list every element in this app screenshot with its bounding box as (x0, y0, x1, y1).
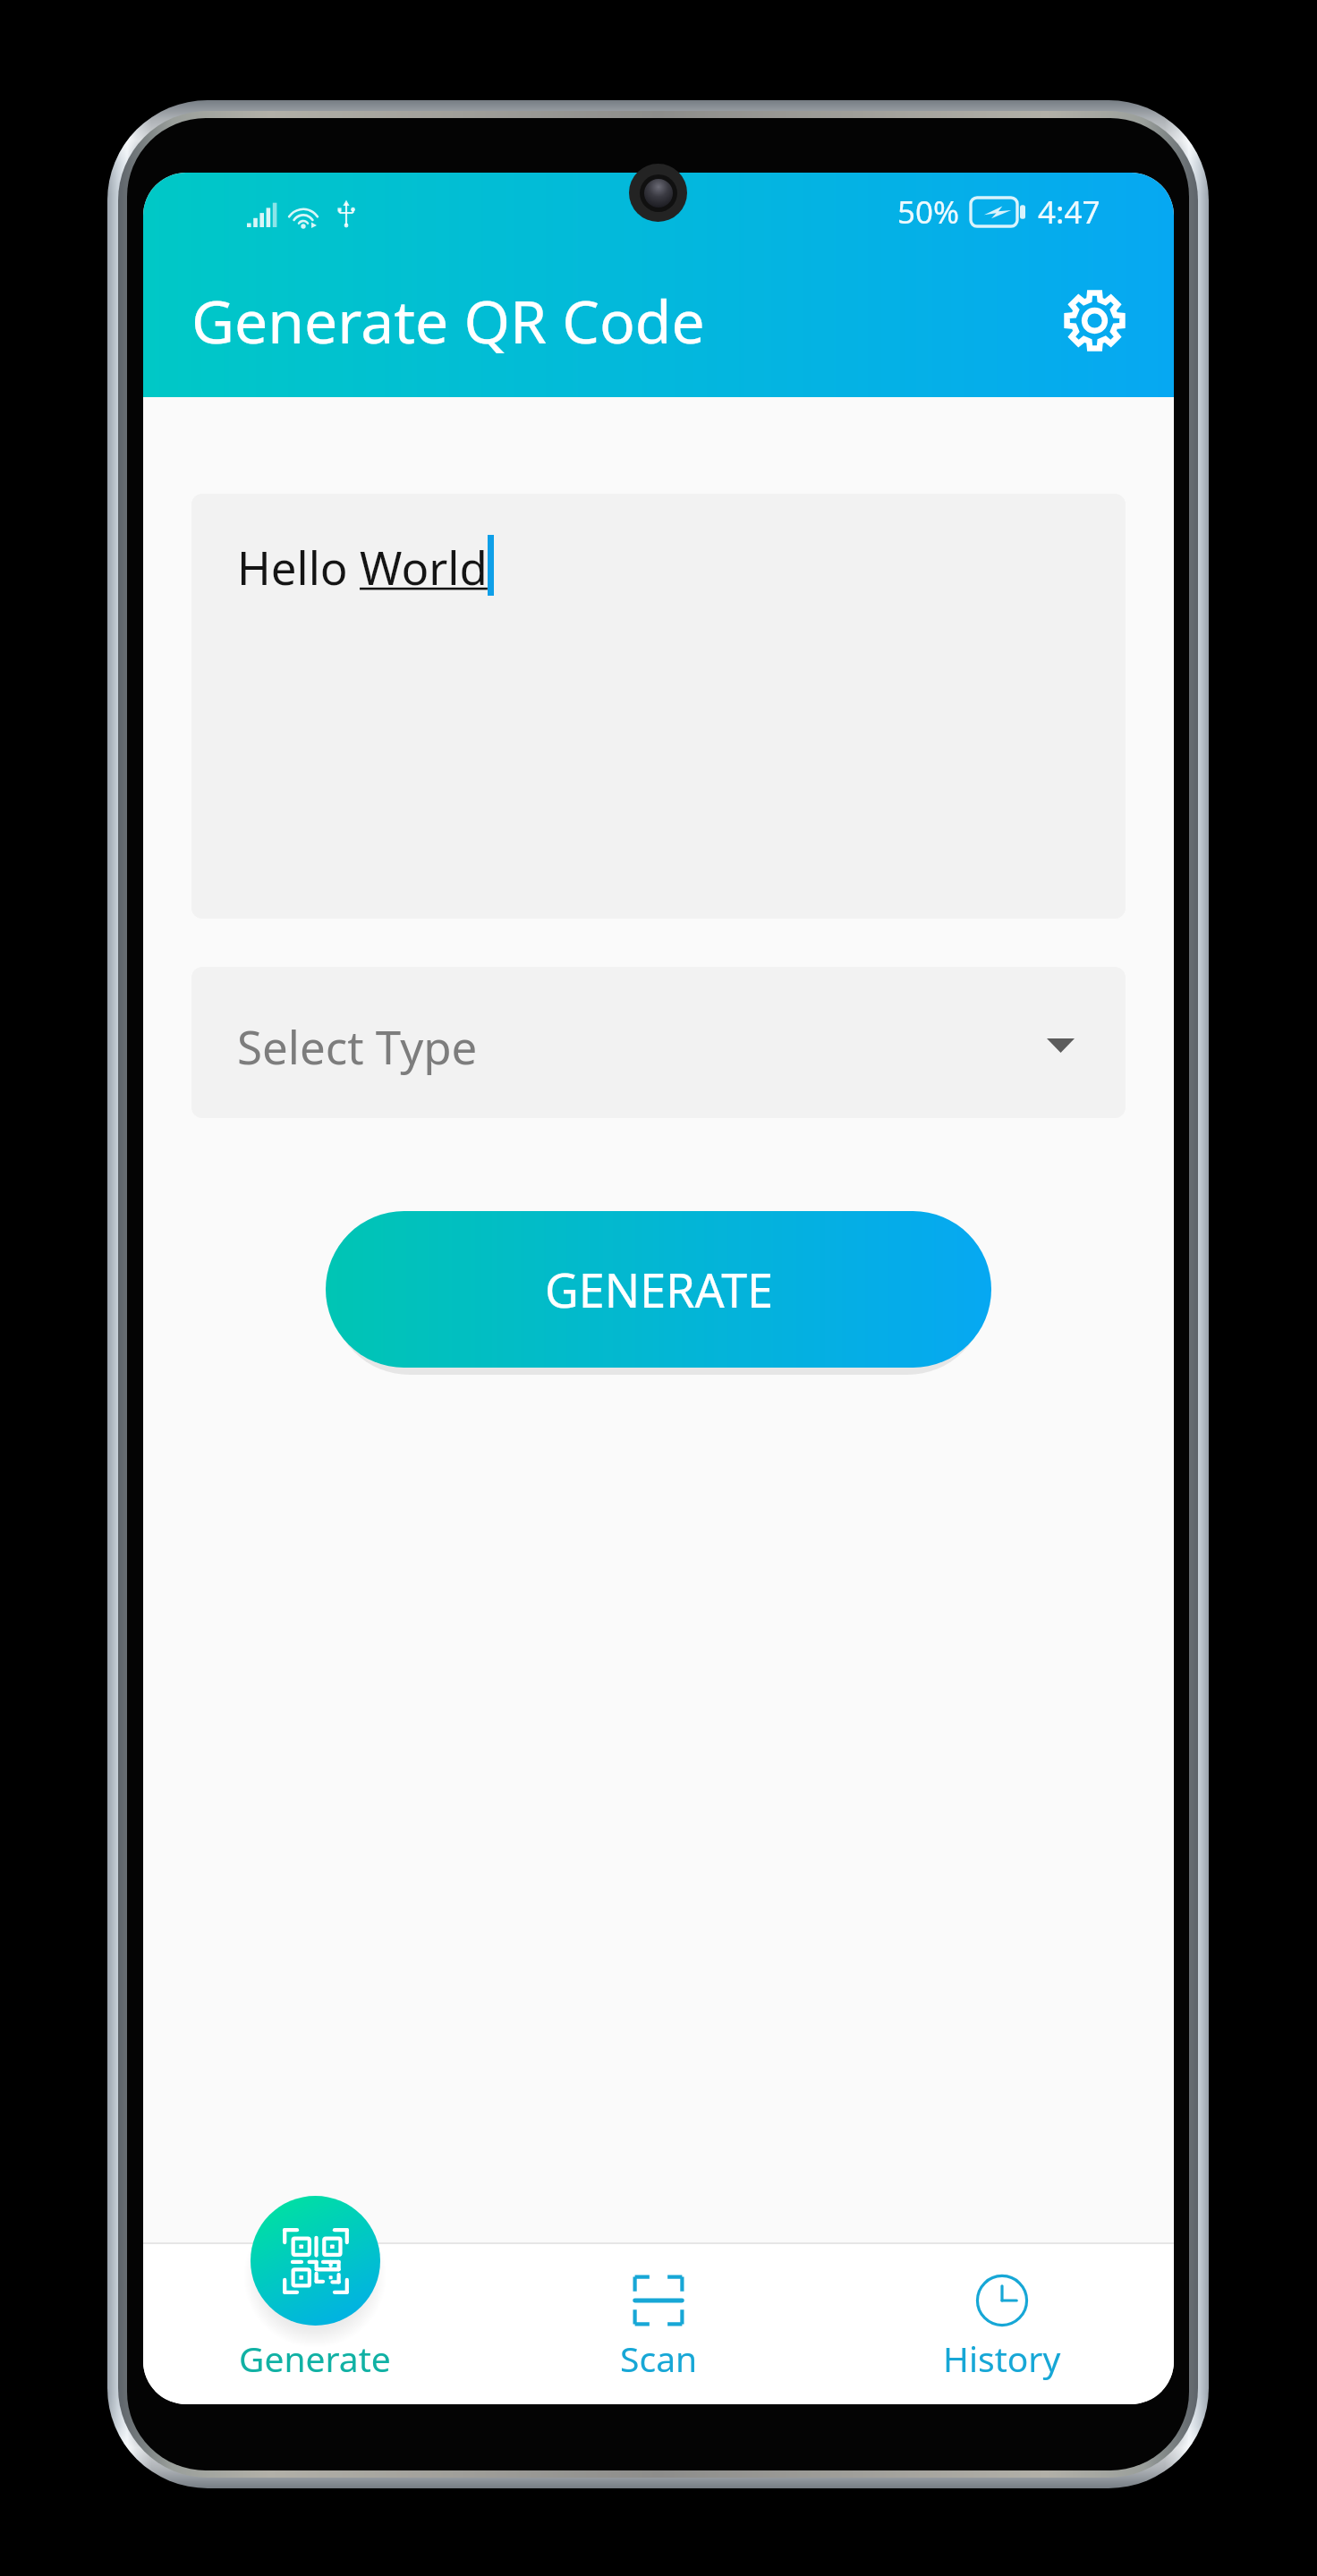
button[interactable]: GENERATE (326, 1211, 991, 1368)
button[interactable]: Generate (143, 2242, 487, 2404)
staticText: History (943, 2334, 1061, 2382)
staticText: World (360, 536, 488, 597)
button[interactable]: Scan (487, 2242, 830, 2404)
staticText: Generate (239, 2334, 391, 2382)
staticText: 50% (897, 191, 960, 233)
staticText: 4:47 (1038, 191, 1100, 233)
staticText: Generate QR Code (191, 280, 705, 360)
staticText: Scan (620, 2334, 698, 2382)
staticText: Select Type (237, 1015, 478, 1077)
staticText: GENERATE (545, 1258, 773, 1321)
button[interactable]: History (830, 2242, 1174, 2404)
staticText: Hello (237, 536, 360, 597)
button[interactable]: Settings (1051, 277, 1137, 363)
button[interactable]: Hello (191, 494, 1126, 919)
button[interactable]: Select Type (191, 967, 1126, 1118)
